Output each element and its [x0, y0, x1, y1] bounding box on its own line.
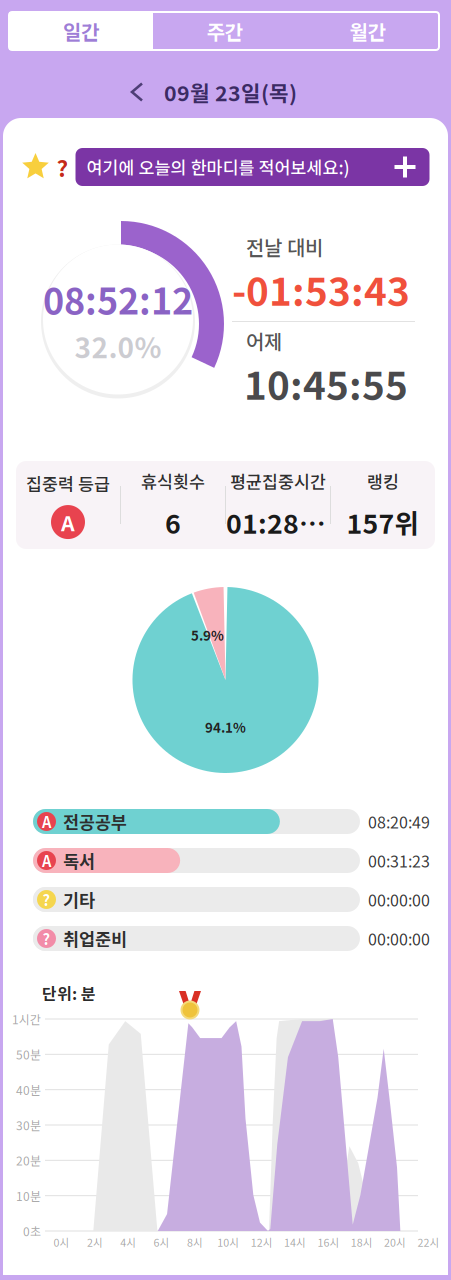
staticText: 01:28:42: [226, 503, 330, 541]
staticText: A: [42, 811, 51, 832]
staticText: 8시: [187, 1234, 203, 1250]
staticText: 0시: [53, 1234, 69, 1250]
staticText: 20시: [384, 1234, 406, 1250]
staticText: 5.9%: [191, 625, 224, 645]
staticText: 4시: [120, 1234, 136, 1250]
staticText: 16시: [317, 1234, 339, 1250]
staticText: 기타: [63, 887, 95, 912]
staticText: 어제: [246, 326, 282, 355]
button[interactable]: 여기에 오늘의 한마디를 적어보세요:): [75, 148, 429, 186]
staticText: 주간: [206, 16, 242, 45]
staticText: 32.0%: [74, 326, 161, 366]
staticText: 독서: [63, 848, 95, 873]
staticText: 0초: [23, 1222, 41, 1240]
staticText: 50분: [16, 1046, 41, 1063]
staticText: A: [42, 850, 51, 871]
staticText: ?: [56, 151, 68, 183]
staticText: 08:20:49: [368, 810, 430, 833]
staticText: 10시: [217, 1234, 239, 1250]
staticText: 08:52:12: [43, 273, 193, 325]
button[interactable]: ?: [39, 887, 423, 912]
staticText: A: [61, 507, 75, 537]
staticText: 157위: [346, 503, 419, 541]
staticText: 40분: [16, 1081, 41, 1098]
staticText: 94.1%: [205, 717, 246, 737]
staticText: 14시: [284, 1234, 306, 1250]
staticText: 09월 23일(목): [164, 77, 297, 107]
staticText: 2시: [87, 1234, 103, 1250]
staticText: 집중력 등급: [26, 471, 110, 496]
staticText: 평균집중시간: [230, 469, 326, 494]
staticText: 월간: [349, 16, 385, 45]
staticText: 6시: [154, 1234, 170, 1250]
staticText: 00:00:00: [368, 888, 430, 911]
staticText: 단위: 분: [42, 981, 96, 1005]
staticText: -01:53:43: [232, 261, 410, 317]
staticText: 취업준비: [63, 926, 127, 951]
staticText: 여기에 오늘의 한마디를 적어보세요:): [86, 154, 349, 180]
staticText: 00:00:00: [368, 927, 430, 950]
staticText: 전공공부: [63, 809, 127, 834]
staticText: 12시: [251, 1234, 273, 1250]
staticText: 18시: [351, 1234, 373, 1250]
button[interactable]: A: [39, 848, 423, 873]
staticText: 10분: [16, 1187, 41, 1204]
staticText: 00:31:23: [368, 849, 430, 872]
staticText: ?: [42, 889, 50, 910]
button[interactable]: 월간: [296, 12, 439, 50]
staticText: 20분: [16, 1152, 41, 1169]
button[interactable]: Previous day: [125, 76, 149, 107]
staticText: 6: [165, 503, 181, 541]
staticText: 전날 대비: [246, 232, 323, 261]
staticText: 10:45:55: [244, 355, 408, 411]
staticText: 1시간: [12, 1010, 41, 1028]
button[interactable]: 일간: [9, 12, 153, 50]
staticText: 30분: [16, 1116, 41, 1134]
staticText: 일간: [63, 16, 99, 45]
staticText: 휴식횟수: [141, 469, 205, 494]
button[interactable]: ?: [39, 926, 423, 951]
button[interactable]: A: [39, 809, 423, 834]
staticText: 랭킹: [367, 469, 399, 494]
staticText: ?: [42, 928, 50, 949]
staticText: 22시: [417, 1234, 439, 1250]
button[interactable]: 주간: [153, 12, 296, 50]
